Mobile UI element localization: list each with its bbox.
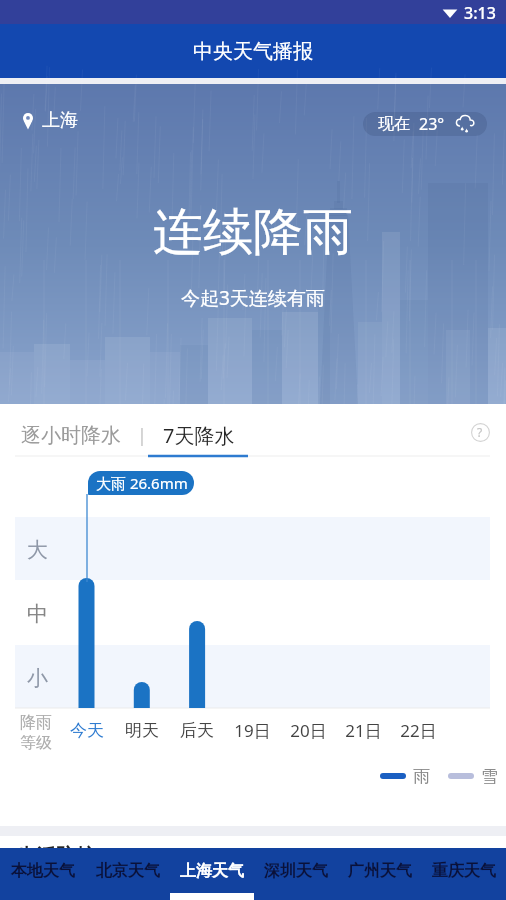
staticText: 中 <box>27 601 48 625</box>
staticText: 大雨 26.6mm <box>96 473 188 493</box>
button[interactable]: 20日 <box>281 717 335 743</box>
staticText: | <box>137 423 147 448</box>
button[interactable]: 广州天气 <box>338 848 422 900</box>
staticText: 小 <box>27 665 48 689</box>
staticText: 逐小时降水 <box>21 423 121 448</box>
button[interactable]: 本地天气 <box>0 848 85 900</box>
staticText: ? <box>477 424 483 440</box>
staticText: 连续降雨 <box>153 201 353 264</box>
staticText: 深圳天气 <box>264 861 328 881</box>
button[interactable]: 北京天气 <box>85 848 170 900</box>
staticText: 3:13 <box>464 2 496 24</box>
button[interactable]: Help <box>466 418 494 446</box>
other: Location <box>22 112 34 130</box>
button[interactable]: 深圳天气 <box>254 848 338 900</box>
staticText: 20日 <box>290 719 327 742</box>
staticText: 后天 <box>180 720 214 741</box>
staticText: 19日 <box>234 719 271 742</box>
staticText: 7天降水 <box>163 422 235 449</box>
button[interactable]: 大雨 26.6mm <box>88 471 194 495</box>
button[interactable]: 19日 <box>225 717 279 743</box>
staticText: 重庆天气 <box>432 861 496 881</box>
staticText: 等级 <box>20 733 52 753</box>
staticText: 今起3天连续有雨 <box>181 285 325 311</box>
button[interactable]: 现在 <box>363 112 487 136</box>
staticText: 雪 <box>481 766 498 786</box>
button[interactable]: 21日 <box>336 717 390 743</box>
staticText: 雨 <box>413 766 430 786</box>
staticText: 本地天气 <box>11 861 75 881</box>
staticText: 明天 <box>125 720 159 741</box>
staticText: 23° <box>419 113 445 135</box>
staticText: 22日 <box>400 719 437 742</box>
staticText: 今天 <box>70 720 104 741</box>
staticText: 广州天气 <box>348 861 412 881</box>
button[interactable]: 7天降水 <box>163 422 235 449</box>
button[interactable]: 今天 <box>60 717 114 743</box>
staticText: 上海 <box>42 109 78 132</box>
button[interactable]: Location <box>22 109 78 132</box>
staticText: 生活防护 <box>16 844 96 869</box>
button[interactable]: 上海天气 <box>170 848 254 900</box>
staticText: 上海天气 <box>180 861 244 881</box>
button[interactable]: 后天 <box>170 717 224 743</box>
button[interactable]: 22日 <box>391 717 445 743</box>
button[interactable]: 重庆天气 <box>422 848 506 900</box>
staticText: 降雨 <box>20 713 52 733</box>
staticText: 中央天气播报 <box>193 39 313 64</box>
staticText: 21日 <box>345 719 382 742</box>
button[interactable]: 逐小时降水 <box>21 423 121 448</box>
staticText: 现在 <box>378 114 410 134</box>
staticText: 大 <box>27 537 48 561</box>
staticText: 北京天气 <box>96 861 160 881</box>
button[interactable]: 明天 <box>115 717 169 743</box>
